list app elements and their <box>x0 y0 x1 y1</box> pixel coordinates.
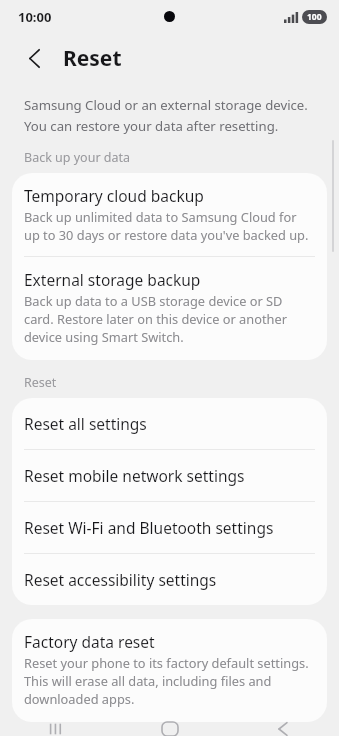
button[interactable]: External storage backup <box>12 257 327 360</box>
staticText: Back up data to a USB storage device or … <box>24 292 311 346</box>
staticText: External storage backup <box>24 269 201 290</box>
button[interactable]: Reset accessibility settings <box>12 554 327 605</box>
staticText: Back up unlimited data to Samsung Cloud … <box>24 208 311 244</box>
button[interactable]: Back <box>18 42 50 74</box>
button[interactable]: Home <box>113 722 226 736</box>
staticText: Temporary cloud backup <box>24 185 204 206</box>
staticText: Factory data reset <box>24 631 155 652</box>
staticText: Samsung Cloud or an external storage dev… <box>24 96 313 135</box>
staticText: Reset mobile network settings <box>24 465 245 486</box>
staticText: Reset <box>24 374 57 391</box>
staticText: Reset Wi-Fi and Bluetooth settings <box>24 517 274 538</box>
staticText: Reset <box>63 44 122 73</box>
staticText: Reset accessibility settings <box>24 569 217 590</box>
staticText: 10:00 <box>18 8 52 26</box>
staticText: Reset your phone to its factory default … <box>24 654 311 708</box>
button[interactable]: Reset Wi-Fi and Bluetooth settings <box>12 502 327 553</box>
button[interactable]: Reset all settings <box>12 398 327 449</box>
staticText: Reset all settings <box>24 413 147 434</box>
button[interactable]: Recent apps <box>0 722 113 736</box>
staticText: 100 <box>307 11 322 23</box>
button[interactable]: Temporary cloud backup <box>12 173 327 256</box>
button[interactable]: Back <box>226 722 339 736</box>
button[interactable]: Reset mobile network settings <box>12 450 327 501</box>
staticText: Back up your data <box>24 149 131 166</box>
button[interactable]: Factory data reset <box>12 619 327 722</box>
